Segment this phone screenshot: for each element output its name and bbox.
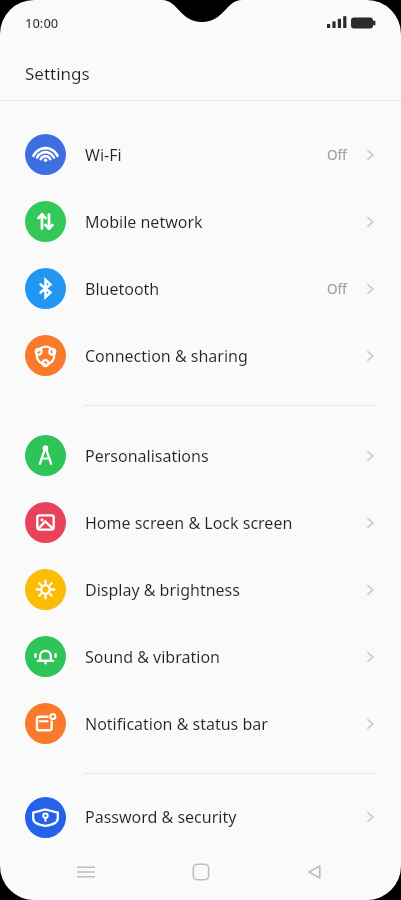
staticText: Home screen & Lock screen	[85, 512, 361, 534]
button[interactable]: Mobile network	[0, 188, 401, 255]
staticText: Personalisations	[85, 445, 361, 467]
button[interactable]: Sound & vibration	[0, 623, 401, 690]
button[interactable]: Wi-Fi	[0, 121, 401, 188]
button[interactable]: Back	[287, 844, 343, 900]
button[interactable]: Recent apps	[58, 844, 114, 900]
button[interactable]: Password & security	[0, 790, 401, 844]
staticText: Connection & sharing	[85, 345, 361, 367]
button[interactable]: Bluetooth	[0, 255, 401, 322]
staticText: Off	[327, 146, 347, 164]
staticText: Settings	[25, 62, 90, 85]
button[interactable]: Connection & sharing	[0, 322, 401, 389]
staticText: 10:00	[25, 14, 59, 32]
button[interactable]: Home screen & Lock screen	[0, 489, 401, 556]
staticText: Display & brightness	[85, 579, 361, 601]
button[interactable]: Notification & status bar	[0, 690, 401, 757]
button[interactable]: Personalisations	[0, 422, 401, 489]
staticText: Notification & status bar	[85, 713, 361, 735]
button[interactable]: Display & brightness	[0, 556, 401, 623]
staticText: Mobile network	[85, 211, 361, 233]
staticText: Sound & vibration	[85, 646, 361, 668]
staticText: Password & security	[85, 806, 361, 828]
staticText: Wi-Fi	[85, 144, 327, 166]
button[interactable]: Home	[173, 844, 229, 900]
staticText: Bluetooth	[85, 278, 327, 300]
staticText: Off	[327, 280, 347, 298]
